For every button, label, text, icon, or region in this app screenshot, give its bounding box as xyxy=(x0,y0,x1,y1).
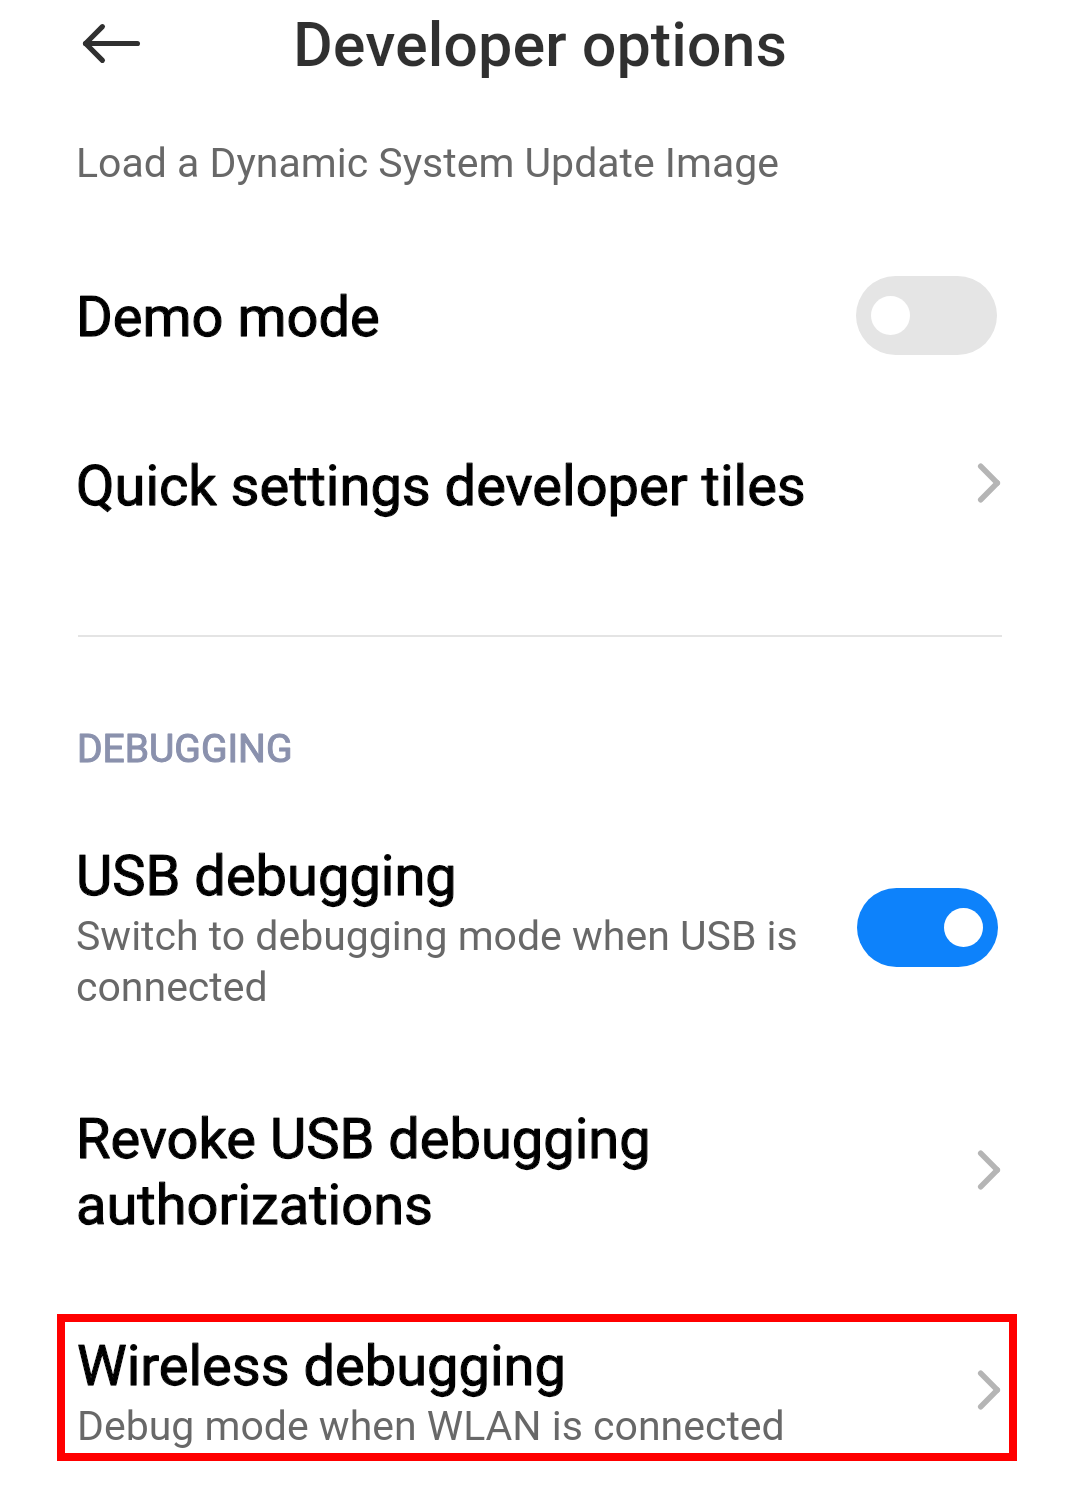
button[interactable]: Switch on xyxy=(857,888,998,967)
staticText: USB debugging xyxy=(76,843,457,909)
button[interactable]: Back xyxy=(72,14,151,73)
button[interactable]: Revoke USB debugging authorizations xyxy=(0,1082,1080,1262)
button[interactable]: Demo mode xyxy=(0,255,1080,375)
staticText: Switch to debugging mode when USB is con… xyxy=(76,912,845,1011)
staticText: Wireless debugging xyxy=(77,1333,566,1399)
staticText: Debug mode when WLAN is connected xyxy=(77,1402,785,1450)
staticText: Quick settings developer tiles xyxy=(76,453,806,519)
staticText: Developer options xyxy=(293,9,787,80)
button[interactable]: Switch off xyxy=(856,276,997,355)
button[interactable]: Wireless debugging xyxy=(57,1314,1017,1461)
button[interactable]: USB debugging xyxy=(0,832,1080,1022)
staticText: Load a Dynamic System Update Image xyxy=(76,139,780,187)
button[interactable]: Quick settings developer tiles xyxy=(0,426,1080,546)
staticText: Demo mode xyxy=(76,284,380,350)
staticText: DEBUGGING xyxy=(77,726,293,772)
staticText: Revoke USB debugging authorizations xyxy=(76,1106,699,1238)
